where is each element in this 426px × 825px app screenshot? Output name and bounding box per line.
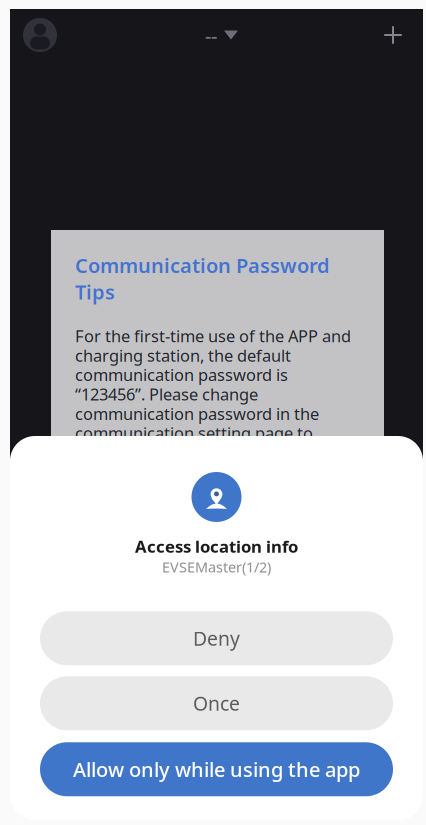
button[interactable]: -- <box>190 15 243 55</box>
staticText: -- <box>205 23 217 47</box>
staticText: EVSEMaster(1/2) <box>162 559 271 575</box>
staticText: Deny <box>193 627 240 649</box>
staticText: Allow only while using the app <box>73 758 360 781</box>
staticText: Once <box>193 692 240 714</box>
staticText: For the first-time use of the APP and ch… <box>75 326 351 443</box>
button[interactable]: Allow only while using the app <box>40 742 393 796</box>
staticText: Access location info <box>135 537 298 556</box>
button[interactable]: Profile <box>18 13 62 57</box>
button[interactable]: Deny <box>40 611 393 665</box>
button[interactable]: Once <box>40 676 393 730</box>
button[interactable]: Add <box>371 13 415 57</box>
staticText: Communication Password Tips <box>75 252 330 305</box>
